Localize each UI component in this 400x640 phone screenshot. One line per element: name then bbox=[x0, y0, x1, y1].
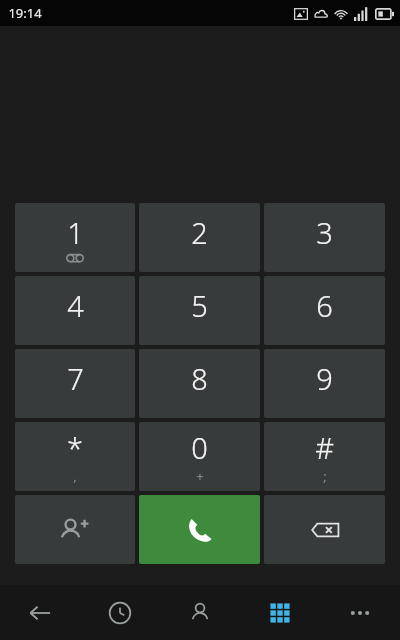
staticText: 9 bbox=[316, 359, 333, 398]
button[interactable]: 1 bbox=[15, 203, 135, 272]
button[interactable]: More options bbox=[320, 585, 400, 640]
button[interactable]: Delete bbox=[264, 495, 385, 564]
button[interactable]: Back bbox=[0, 585, 80, 640]
staticText: # bbox=[315, 428, 334, 467]
button[interactable]: Recents bbox=[80, 585, 160, 640]
button[interactable]: 8 bbox=[139, 349, 260, 418]
button[interactable]: Call bbox=[139, 495, 260, 564]
button[interactable]: 4 bbox=[15, 276, 135, 345]
button[interactable]: Add contact bbox=[15, 495, 135, 564]
button[interactable]: 3 bbox=[264, 203, 385, 272]
button[interactable]: 2 bbox=[139, 203, 260, 272]
button[interactable]: 7 bbox=[15, 349, 135, 418]
staticText: 3 bbox=[316, 213, 333, 252]
button[interactable]: 0 bbox=[139, 422, 260, 491]
staticText: 2 bbox=[191, 213, 208, 252]
staticText: , bbox=[73, 467, 77, 485]
staticText: 4 bbox=[67, 286, 84, 325]
button[interactable]: # bbox=[264, 422, 385, 491]
button[interactable]: Keypad bbox=[240, 585, 320, 640]
staticText: 1 bbox=[67, 213, 84, 252]
button[interactable]: * bbox=[15, 422, 135, 491]
staticText: 8 bbox=[191, 359, 208, 398]
button[interactable]: 9 bbox=[264, 349, 385, 418]
staticText: + bbox=[196, 467, 204, 485]
staticText: 5 bbox=[191, 286, 208, 325]
staticText: 6 bbox=[316, 286, 333, 325]
button[interactable]: Contacts bbox=[160, 585, 240, 640]
staticText: 19:14 bbox=[8, 4, 42, 22]
button[interactable]: 5 bbox=[139, 276, 260, 345]
staticText: ; bbox=[323, 467, 327, 485]
button[interactable]: 6 bbox=[264, 276, 385, 345]
staticText: * bbox=[67, 428, 83, 467]
staticText: 7 bbox=[67, 359, 84, 398]
staticText: 0 bbox=[191, 428, 208, 467]
